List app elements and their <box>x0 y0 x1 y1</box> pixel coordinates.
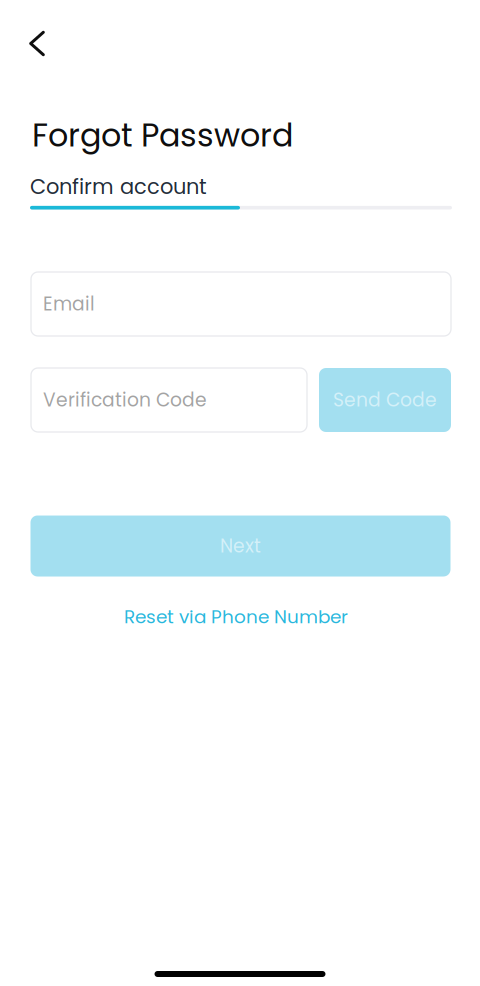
button[interactable]: Send Code <box>319 368 451 432</box>
button[interactable]: Email <box>31 272 451 336</box>
staticText: Verification Code <box>43 387 207 413</box>
staticText: Email <box>43 291 95 317</box>
staticText: Reset via Phone Number <box>124 604 348 630</box>
button[interactable]: Verification Code <box>31 368 307 432</box>
staticText: Send Code <box>333 387 437 413</box>
staticText: Confirm account <box>30 172 207 201</box>
button[interactable]: Back <box>15 21 59 65</box>
staticText: Forgot Password <box>32 113 293 157</box>
button[interactable]: Reset via Phone Number <box>116 599 356 635</box>
staticText: Next <box>220 533 261 559</box>
button[interactable]: Next <box>30 515 450 576</box>
